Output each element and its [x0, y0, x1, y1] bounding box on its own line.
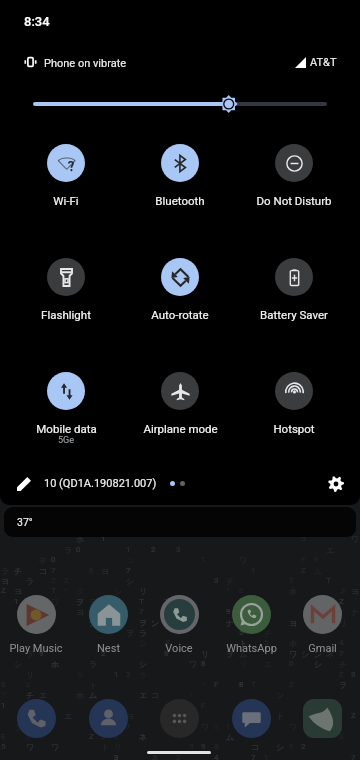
staticText: 1 — [339, 607, 344, 616]
button[interactable]: Bluetooth — [123, 144, 237, 207]
staticText: チ — [264, 628, 273, 638]
staticText: Z — [339, 597, 344, 606]
staticText: ヲ — [26, 701, 35, 711]
button[interactable]: Gmail — [288, 595, 356, 655]
staticText: シ — [14, 659, 23, 669]
staticText: ヨ — [351, 586, 360, 596]
staticText: Z — [89, 732, 94, 741]
staticText: 1 — [1, 701, 6, 710]
button[interactable]: Phone — [12, 694, 60, 742]
button[interactable]: Hotspot — [237, 372, 351, 435]
staticText: ワ — [26, 607, 35, 617]
staticText: 8 — [239, 680, 244, 689]
button[interactable]: Auto-rotate — [123, 258, 237, 321]
button[interactable]: Voice — [145, 595, 213, 655]
staticText: 2 — [301, 742, 306, 751]
button[interactable]: Nest — [74, 595, 142, 655]
button[interactable]: Dolphin Browser — [298, 694, 346, 742]
button[interactable]: Contacts — [84, 694, 132, 742]
staticText: 0 — [76, 545, 81, 554]
staticText: Hotspot — [273, 422, 315, 435]
staticText: 1 — [101, 534, 106, 543]
staticText: ヲ — [339, 680, 348, 690]
staticText: 2 — [151, 545, 156, 554]
staticText: チ — [164, 638, 173, 648]
staticText: ワ — [26, 742, 35, 752]
staticText: Bluetooth — [155, 194, 205, 207]
staticText: ヨ — [14, 586, 23, 596]
staticText: 0 — [51, 555, 56, 564]
staticText: Flashlight — [41, 308, 91, 321]
button[interactable]: All apps — [155, 694, 203, 742]
button[interactable]: Battery Saver — [237, 258, 351, 321]
staticText: 7 — [251, 753, 256, 760]
staticText: 1 — [201, 555, 206, 564]
staticText: コ — [39, 566, 48, 576]
staticText: ヨ — [126, 711, 135, 721]
staticText: 3 — [214, 742, 219, 751]
staticText: 6 — [89, 566, 94, 575]
staticText: T — [51, 586, 56, 595]
staticText: ヲ — [26, 649, 35, 659]
staticText: Voice — [165, 642, 193, 655]
staticText: 1 — [226, 722, 231, 731]
staticText: Do Not Disturb — [256, 194, 332, 207]
staticText: ラ — [139, 628, 148, 638]
button[interactable]: 37° — [4, 507, 356, 537]
staticText: ム — [39, 597, 48, 607]
staticText: ホ — [101, 607, 110, 617]
staticText: ネ — [326, 649, 335, 659]
staticText: ナ — [226, 618, 235, 628]
staticText: Mobile data — [36, 422, 97, 435]
staticText: チ — [226, 576, 235, 586]
staticText: T — [176, 628, 181, 637]
staticText: ナ — [89, 618, 98, 628]
staticText: 7 — [51, 566, 56, 575]
staticText: AT&T — [310, 56, 337, 69]
button[interactable]: Wi-Fi — [9, 144, 123, 207]
staticText: ン — [314, 722, 323, 732]
button[interactable]: Edit tiles — [12, 472, 36, 496]
staticText: ワ — [51, 597, 60, 607]
staticText: チ — [26, 732, 35, 742]
button[interactable]: Settings — [324, 472, 348, 496]
button[interactable]: WhatsApp — [217, 595, 285, 655]
staticText: チ — [14, 566, 23, 576]
staticText: 8 — [164, 649, 169, 658]
staticText: F — [201, 701, 206, 710]
staticText: シ — [301, 649, 310, 659]
staticText: 9 — [39, 649, 44, 658]
button[interactable]: Play Music — [2, 595, 70, 655]
staticText: T — [139, 597, 144, 606]
staticText: ン — [314, 649, 323, 659]
staticText: T — [164, 597, 169, 606]
button[interactable]: Mobile data — [9, 372, 123, 446]
staticText: 5 — [39, 722, 44, 731]
staticText: 7 — [289, 576, 294, 585]
staticText: Play Music — [9, 642, 63, 655]
staticText: 3 — [1, 680, 6, 689]
staticText: 1 — [14, 597, 19, 606]
staticText: 8 — [201, 659, 206, 668]
staticText: 1 — [114, 670, 119, 679]
staticText: ヨ — [1, 576, 10, 586]
button[interactable]: Flashlight — [9, 258, 123, 321]
staticText: E — [239, 618, 244, 627]
staticText: ワ — [189, 659, 198, 669]
button[interactable]: Do Not Disturb — [237, 144, 351, 207]
button[interactable]: Messages — [227, 694, 275, 742]
staticText: エ — [64, 711, 73, 721]
staticText: 3 — [114, 753, 119, 760]
button[interactable]: Airplane mode — [123, 372, 237, 435]
staticText: ワ — [239, 555, 248, 565]
staticText: 7 — [339, 649, 344, 658]
staticText: ナ — [351, 607, 360, 617]
staticText: 10 (QD1A.190821.007) — [44, 477, 157, 490]
